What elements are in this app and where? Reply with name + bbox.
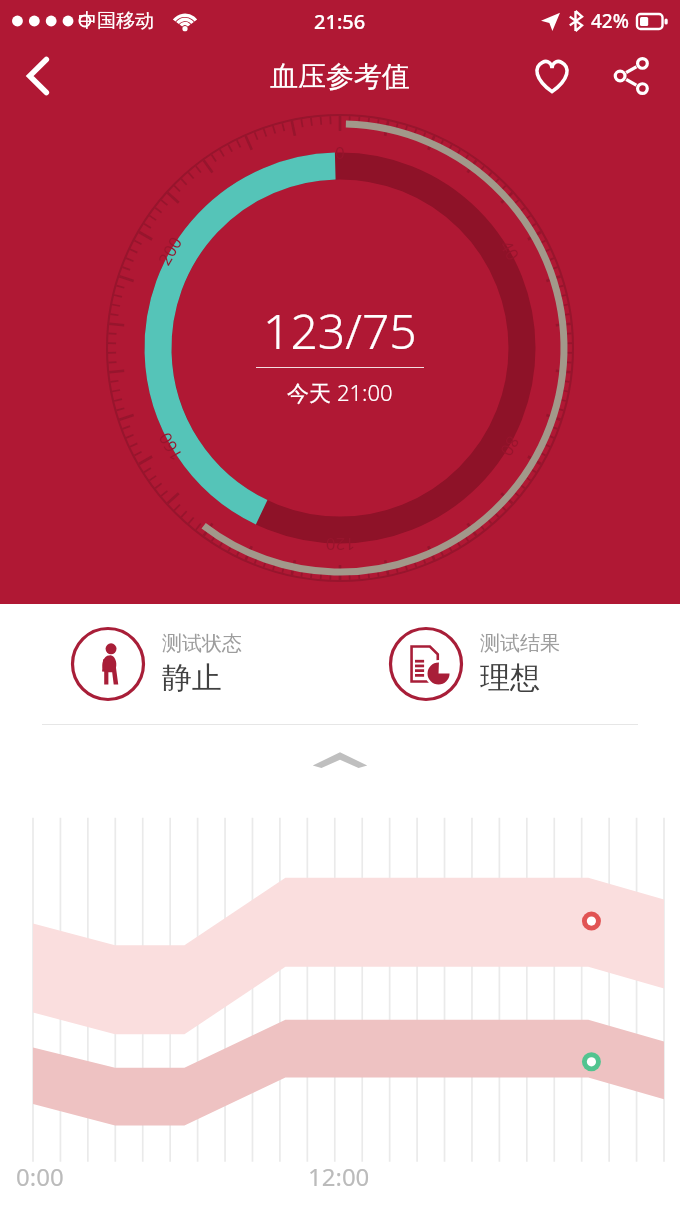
staticText: 80 [495,432,525,461]
staticText: 今天 [287,377,337,407]
staticText: 静止 [162,659,222,697]
button[interactable]: Back [8,48,68,104]
staticText: 测试结果 [480,631,560,656]
staticText: 中国移动 [78,9,154,33]
staticText: 120 [325,533,355,556]
button[interactable]: Favorite [522,48,582,104]
button[interactable]: 测试结果 [340,604,680,724]
staticText: 0:00 [16,1160,64,1193]
staticText: 42% [591,8,629,34]
staticText: 0 [335,141,345,164]
staticText: 40 [495,236,525,265]
button[interactable]: Share [602,48,662,104]
staticText: 21:00 [337,377,393,407]
staticText: 血压参考值 [270,59,410,94]
staticText: 测试状态 [162,631,242,656]
staticText: 200 [152,232,187,269]
staticText: 12:00 [308,1160,370,1193]
staticText: 123/75 [263,298,417,363]
button[interactable]: 测试状态 [0,604,340,724]
staticText: 理想 [480,659,540,697]
staticText: 21:56 [314,8,366,35]
staticText: 160 [152,428,187,465]
